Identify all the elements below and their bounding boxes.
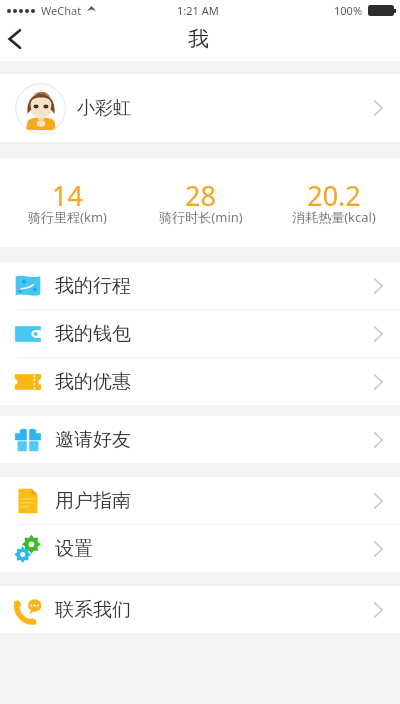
staticText: 我的行程 xyxy=(55,274,131,298)
staticText: 28 xyxy=(185,177,216,214)
button[interactable]: 邀请好友 xyxy=(0,416,400,463)
button[interactable]: 设置 xyxy=(0,525,400,572)
button[interactable]: 我的钱包 xyxy=(0,310,400,357)
staticText: 设置 xyxy=(55,537,93,561)
staticText: 消耗热量(kcal) xyxy=(292,208,376,226)
staticText: 我的优惠 xyxy=(55,370,131,394)
button[interactable]: 联系我们 xyxy=(0,586,400,633)
staticText: 20.2 xyxy=(307,177,361,214)
staticText: 我 xyxy=(188,26,209,52)
button[interactable]: 用户指南 xyxy=(0,477,400,524)
staticText: 用户指南 xyxy=(55,489,131,513)
staticText: WeChat xyxy=(41,3,82,18)
staticText: 我的钱包 xyxy=(55,322,131,346)
staticText: 100% xyxy=(334,3,363,18)
staticText: 14 xyxy=(52,177,83,214)
staticText: 小彩虹 xyxy=(77,97,131,120)
staticText: 骑行里程(km) xyxy=(28,208,107,226)
button[interactable]: 我的优惠 xyxy=(0,358,400,405)
staticText: 1:21 AM xyxy=(177,3,219,18)
staticText: 邀请好友 xyxy=(55,428,131,452)
staticText: 联系我们 xyxy=(55,598,131,622)
staticText: 骑行时长(min) xyxy=(159,208,243,226)
button[interactable]: 小彩虹 xyxy=(0,74,400,142)
button[interactable]: Back xyxy=(0,21,40,61)
button[interactable]: 我的行程 xyxy=(0,262,400,309)
